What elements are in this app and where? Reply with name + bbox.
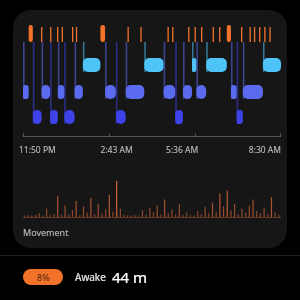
staticText: 8% xyxy=(37,271,50,283)
button[interactable]: Sleep stages chart xyxy=(13,10,287,248)
staticText: Movement xyxy=(23,226,69,238)
staticText: 11:50 PM xyxy=(19,144,84,156)
staticText: 5:36 AM xyxy=(149,144,215,156)
staticText: 44 m xyxy=(112,267,148,287)
staticText: Awake xyxy=(75,270,106,284)
staticText: 8:30 AM xyxy=(215,144,281,156)
button[interactable]: 8% xyxy=(0,262,300,292)
staticText: 2:43 AM xyxy=(84,144,149,156)
